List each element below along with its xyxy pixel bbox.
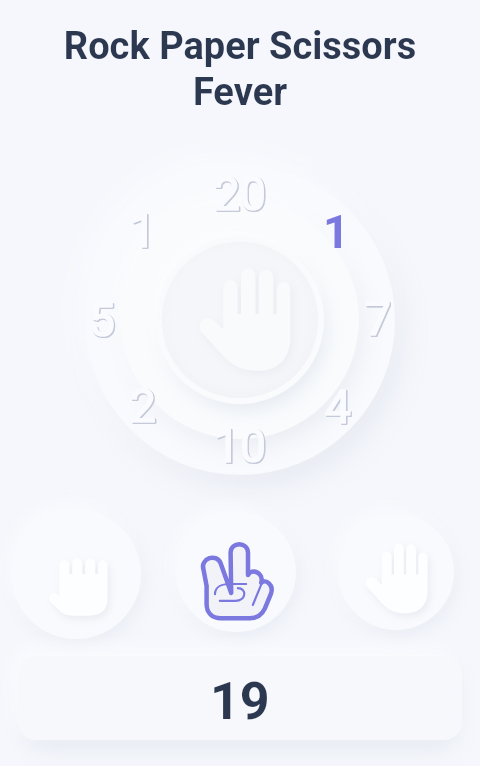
button[interactable]: Paper (338, 514, 454, 630)
staticText: 19 (210, 671, 270, 732)
staticText: Rock Paper Scissors Fever (30, 24, 450, 115)
button[interactable]: Rock (11, 509, 141, 639)
button[interactable]: Scissors (176, 512, 296, 632)
button[interactable]: 19 (18, 659, 462, 743)
